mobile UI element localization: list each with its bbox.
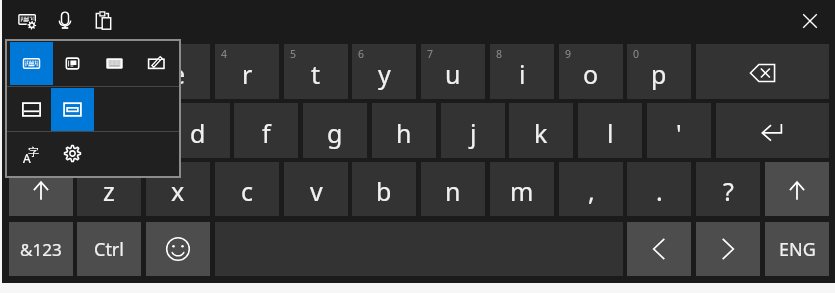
button[interactable]: . bbox=[627, 162, 691, 216]
button[interactable]: m bbox=[490, 162, 554, 216]
staticText: b bbox=[376, 174, 392, 208]
button[interactable]: 8 bbox=[490, 44, 554, 99]
button[interactable]: Default keyboard layout bbox=[10, 42, 53, 85]
staticText: j bbox=[470, 116, 477, 150]
staticText: 3 bbox=[152, 47, 159, 61]
staticText: ? bbox=[723, 174, 734, 208]
button[interactable]: s bbox=[97, 103, 161, 158]
staticText: 7 bbox=[427, 47, 434, 61]
staticText: l bbox=[607, 116, 614, 150]
staticText: k bbox=[534, 116, 548, 150]
staticText: s bbox=[123, 116, 135, 150]
button[interactable]: k bbox=[509, 103, 573, 158]
staticText: e bbox=[171, 57, 186, 91]
button[interactable]: Move cursor right bbox=[696, 222, 760, 276]
button[interactable]: g bbox=[303, 103, 367, 158]
button[interactable]: j bbox=[441, 103, 505, 158]
button[interactable]: ' bbox=[647, 103, 711, 158]
button[interactable]: Move cursor left bbox=[627, 222, 691, 276]
staticText: n bbox=[445, 174, 461, 208]
button[interactable]: Split keyboard bbox=[93, 42, 136, 85]
button[interactable]: Settings bbox=[51, 132, 94, 175]
staticText: i bbox=[519, 57, 526, 91]
staticText: p bbox=[651, 57, 667, 91]
button[interactable]: Emoji bbox=[146, 222, 210, 276]
button[interactable]: n bbox=[421, 162, 485, 216]
staticText: w bbox=[99, 57, 119, 91]
button[interactable]: 1 bbox=[9, 44, 73, 99]
staticText: ENG bbox=[779, 237, 816, 262]
button[interactable]: Keyboard settings bbox=[10, 4, 44, 38]
button[interactable]: Backspace bbox=[696, 44, 829, 99]
button[interactable]: l bbox=[578, 103, 642, 158]
staticText: t bbox=[311, 57, 321, 91]
button[interactable]: 3 bbox=[146, 44, 210, 99]
staticText: c bbox=[241, 174, 254, 208]
staticText: &123 bbox=[20, 238, 62, 261]
staticText: 8 bbox=[496, 47, 503, 61]
staticText: , bbox=[588, 174, 595, 208]
staticText: 5 bbox=[290, 47, 297, 61]
button[interactable]: d bbox=[166, 103, 230, 158]
button[interactable]: 5 bbox=[284, 44, 348, 99]
button[interactable]: Ctrl bbox=[77, 222, 141, 276]
staticText: 0 bbox=[633, 47, 640, 61]
button[interactable]: Handwriting bbox=[134, 42, 177, 85]
staticText: g bbox=[327, 116, 343, 150]
button[interactable]: Microphone dictation bbox=[48, 4, 82, 38]
button[interactable]: 4 bbox=[215, 44, 279, 99]
staticText: ' bbox=[676, 116, 682, 150]
button[interactable]: Docked keyboard bbox=[10, 88, 53, 131]
staticText: r bbox=[242, 57, 253, 91]
staticText: 9 bbox=[565, 47, 572, 61]
button[interactable]: v bbox=[284, 162, 348, 216]
button[interactable]: b bbox=[352, 162, 416, 216]
staticText: m bbox=[510, 174, 534, 208]
button[interactable]: z bbox=[77, 162, 141, 216]
staticText: v bbox=[310, 174, 323, 208]
staticText: 6 bbox=[358, 47, 365, 61]
button[interactable]: Close keyboard bbox=[793, 4, 827, 38]
staticText: h bbox=[396, 116, 412, 150]
staticText: o bbox=[583, 57, 599, 91]
staticText: z bbox=[103, 174, 115, 208]
button[interactable]: c bbox=[215, 162, 279, 216]
staticText: 4 bbox=[221, 47, 228, 61]
button[interactable]: 2 bbox=[77, 44, 141, 99]
staticText: d bbox=[190, 116, 206, 150]
staticText: 字 bbox=[28, 145, 39, 159]
staticText: . bbox=[656, 174, 663, 208]
button[interactable]: Enter bbox=[716, 103, 829, 158]
staticText: Ctrl bbox=[94, 237, 124, 262]
button[interactable]: , bbox=[559, 162, 623, 216]
staticText: a bbox=[53, 116, 68, 150]
button[interactable]: x bbox=[146, 162, 210, 216]
button[interactable]: Input language bbox=[10, 132, 53, 175]
button[interactable]: 9 bbox=[559, 44, 623, 99]
staticText: f bbox=[262, 116, 271, 150]
button[interactable]: Floating keyboard bbox=[51, 88, 94, 131]
button[interactable]: 6 bbox=[352, 44, 416, 99]
staticText: x bbox=[171, 174, 185, 208]
staticText: q bbox=[33, 57, 49, 91]
button[interactable]: ? bbox=[696, 162, 760, 216]
button[interactable]: 7 bbox=[421, 44, 485, 99]
button[interactable]: Shift bbox=[765, 162, 829, 216]
button[interactable]: 0 bbox=[627, 44, 691, 99]
button[interactable]: h bbox=[372, 103, 436, 158]
button[interactable]: f bbox=[234, 103, 298, 158]
button[interactable]: &123 bbox=[9, 222, 73, 276]
button[interactable]: Clipboard history bbox=[86, 4, 120, 38]
staticText: A bbox=[23, 150, 31, 166]
staticText: y bbox=[378, 57, 391, 91]
button[interactable]: Shift bbox=[9, 162, 73, 216]
staticText: u bbox=[445, 57, 461, 91]
button[interactable]: a bbox=[28, 103, 92, 158]
button[interactable]: One-handed keyboard bbox=[51, 42, 94, 85]
button[interactable]: ENG bbox=[765, 222, 829, 276]
